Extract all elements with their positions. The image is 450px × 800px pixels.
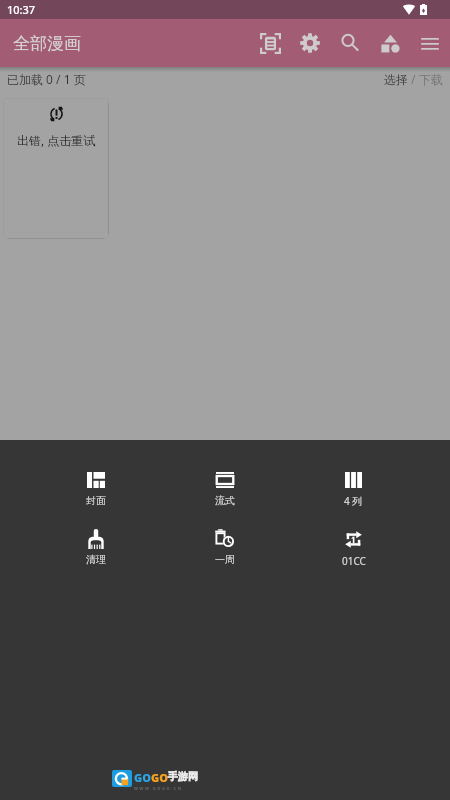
button[interactable]: 01CC [289, 529, 418, 568]
button[interactable]: Scan document [250, 21, 290, 65]
staticText: 出错, 点击重试 [17, 132, 96, 148]
button[interactable]: 出错, 点击重试 [3, 98, 109, 239]
staticText: 01CC [342, 554, 366, 568]
button[interactable]: Menu [410, 21, 450, 65]
staticText: 4 列 [344, 494, 363, 508]
staticText: GO [134, 770, 151, 785]
button[interactable]: Search [330, 21, 370, 65]
staticText: 封面 [86, 494, 106, 507]
button[interactable]: 4 列 [289, 470, 418, 508]
button[interactable]: 下载 [419, 72, 443, 87]
staticText: / [408, 71, 419, 87]
staticText: 手游网 [168, 770, 198, 783]
staticText: GO [151, 770, 168, 785]
staticText: 流式 [215, 494, 235, 507]
staticText: 10:37 [7, 2, 36, 17]
button[interactable]: 流式 [160, 470, 289, 507]
staticText: 一周 [215, 553, 235, 566]
staticText: 已加载 0 / 1 页 [7, 71, 86, 87]
staticText: 清理 [86, 553, 106, 566]
button[interactable]: 一周 [160, 529, 289, 566]
staticText: 全部漫画 [13, 33, 81, 54]
button[interactable]: 封面 [32, 470, 160, 507]
button[interactable]: Categories [370, 21, 410, 65]
button[interactable]: 清理 [32, 529, 160, 566]
staticText: WWW.GOGO.CN [134, 786, 183, 791]
button[interactable]: Settings [290, 21, 330, 65]
button[interactable]: 选择 [384, 72, 408, 87]
